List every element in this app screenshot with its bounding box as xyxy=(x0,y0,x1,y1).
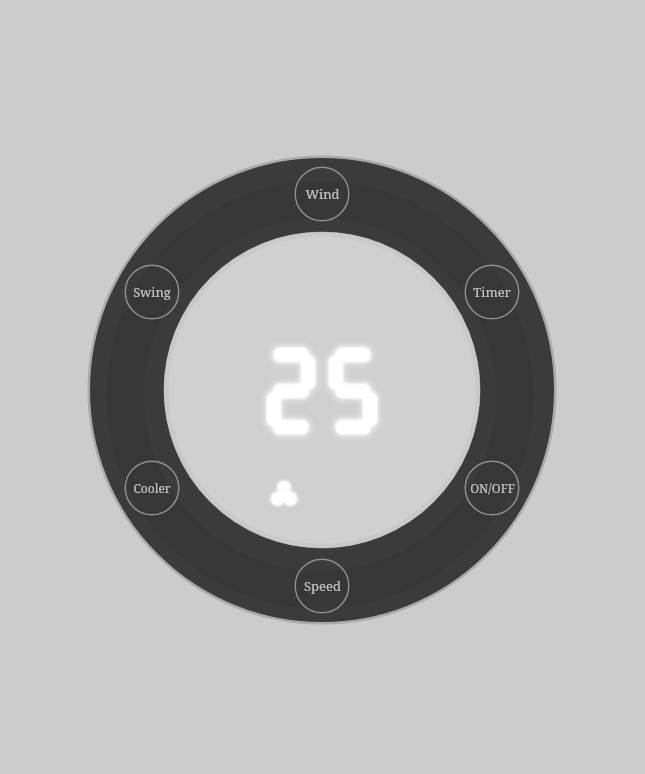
staticText: Timer xyxy=(473,283,511,301)
staticText: Swing xyxy=(133,283,171,301)
staticText: ON/OFF xyxy=(470,480,515,496)
staticText: Cooler xyxy=(133,480,171,496)
button[interactable]: Cooler xyxy=(124,460,180,516)
button[interactable]: Timer xyxy=(464,264,520,320)
button[interactable]: Wind xyxy=(294,166,350,222)
staticText: Wind xyxy=(305,185,340,203)
button[interactable]: Speed xyxy=(294,558,350,614)
button[interactable]: Swing xyxy=(124,264,180,320)
staticText: Speed xyxy=(304,577,341,595)
button[interactable]: ON/OFF xyxy=(464,460,520,516)
